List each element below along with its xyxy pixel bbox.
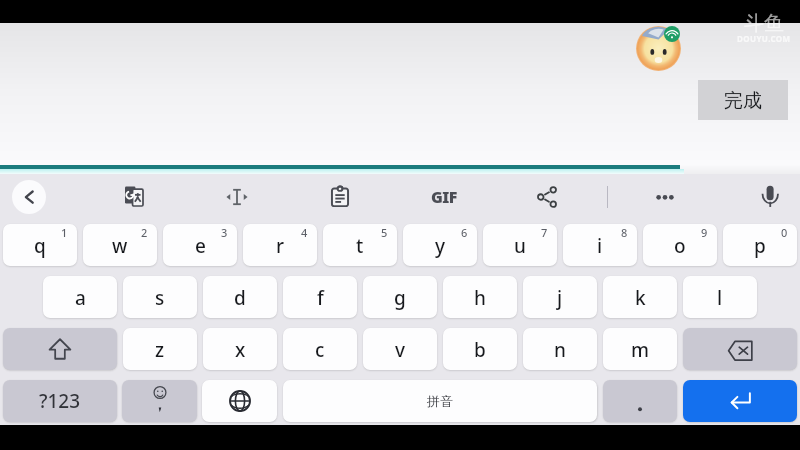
button[interactable]: c bbox=[283, 328, 357, 370]
button[interactable]: q bbox=[3, 224, 77, 266]
button[interactable]: k bbox=[603, 276, 677, 318]
button[interactable]: Back bbox=[12, 180, 46, 214]
staticText: x bbox=[235, 337, 246, 363]
button[interactable]: Backspace bbox=[683, 328, 797, 370]
staticText: u bbox=[514, 233, 526, 259]
button[interactable]: l bbox=[683, 276, 757, 318]
staticText: a bbox=[75, 285, 86, 311]
button[interactable]: Share bbox=[527, 177, 567, 217]
button[interactable]: f bbox=[283, 276, 357, 318]
button[interactable]: o bbox=[643, 224, 717, 266]
staticText: 2 bbox=[141, 225, 148, 240]
button[interactable]: t bbox=[323, 224, 397, 266]
staticText: 拼音 bbox=[427, 393, 453, 409]
staticText: h bbox=[474, 285, 486, 311]
button[interactable]: j bbox=[523, 276, 597, 318]
button[interactable]: Profile bbox=[634, 24, 684, 74]
button[interactable]: m bbox=[603, 328, 677, 370]
button[interactable]: w bbox=[83, 224, 157, 266]
button[interactable]: ?123 bbox=[3, 380, 117, 422]
staticText: v bbox=[395, 337, 406, 363]
button[interactable]: s bbox=[123, 276, 197, 318]
button[interactable]: y bbox=[403, 224, 477, 266]
button[interactable]: More options bbox=[645, 177, 685, 217]
button[interactable]: v bbox=[363, 328, 437, 370]
staticText: f bbox=[317, 285, 324, 311]
staticText: e bbox=[195, 233, 206, 259]
button[interactable]: d bbox=[203, 276, 277, 318]
staticText: d bbox=[234, 285, 246, 311]
button[interactable]: Enter bbox=[683, 380, 797, 422]
staticText: DOUYU.COM bbox=[737, 33, 791, 44]
button[interactable]: a bbox=[43, 276, 117, 318]
staticText: 8 bbox=[621, 225, 628, 240]
staticText: 6 bbox=[461, 225, 468, 240]
staticText: 4 bbox=[301, 225, 308, 240]
staticText: 1 bbox=[61, 225, 68, 240]
staticText: 9 bbox=[701, 225, 708, 240]
button[interactable]: e bbox=[163, 224, 237, 266]
staticText: y bbox=[435, 233, 446, 259]
staticText: GIF bbox=[431, 186, 457, 208]
staticText: b bbox=[474, 337, 486, 363]
button[interactable]: 完成 bbox=[698, 80, 788, 120]
staticText: j bbox=[557, 285, 563, 311]
staticText: 3 bbox=[221, 225, 228, 240]
staticText: s bbox=[155, 285, 165, 311]
staticText: ?123 bbox=[39, 388, 81, 414]
button[interactable]: g bbox=[363, 276, 437, 318]
button[interactable]: z bbox=[123, 328, 197, 370]
staticText: 完成 bbox=[724, 89, 762, 113]
staticText: 5 bbox=[381, 225, 388, 240]
button[interactable]: b bbox=[443, 328, 517, 370]
staticText: 7 bbox=[541, 225, 548, 240]
button[interactable]: Emoji bbox=[122, 380, 197, 422]
staticText: 斗鱼 bbox=[744, 11, 784, 36]
button[interactable]: x bbox=[203, 328, 277, 370]
button[interactable]: Translate bbox=[114, 177, 154, 217]
button[interactable]: r bbox=[243, 224, 317, 266]
staticText: z bbox=[155, 337, 165, 363]
staticText: r bbox=[276, 233, 285, 259]
button[interactable]: Shift bbox=[3, 328, 117, 370]
button[interactable]: u bbox=[483, 224, 557, 266]
staticText: c bbox=[315, 337, 325, 363]
button[interactable]: GIF bbox=[424, 177, 464, 217]
staticText: q bbox=[34, 233, 46, 259]
staticText: t bbox=[356, 233, 364, 259]
button[interactable]: Clipboard bbox=[320, 177, 360, 217]
button[interactable]: Period bbox=[603, 380, 677, 422]
button[interactable]: n bbox=[523, 328, 597, 370]
button[interactable]: i bbox=[563, 224, 637, 266]
staticText: i bbox=[597, 233, 603, 259]
staticText: l bbox=[717, 285, 723, 311]
button[interactable]: Text editing bbox=[217, 177, 257, 217]
staticText: 0 bbox=[781, 225, 788, 240]
staticText: o bbox=[674, 233, 686, 259]
staticText: n bbox=[554, 337, 566, 363]
button[interactable]: h bbox=[443, 276, 517, 318]
staticText: k bbox=[635, 285, 646, 311]
button[interactable]: Voice input bbox=[749, 177, 789, 217]
button[interactable]: Language bbox=[202, 380, 277, 422]
staticText: p bbox=[754, 233, 766, 259]
staticText: w bbox=[112, 233, 128, 259]
staticText: m bbox=[631, 337, 649, 363]
button[interactable]: p bbox=[723, 224, 797, 266]
staticText: g bbox=[394, 285, 406, 311]
button[interactable]: 拼音 bbox=[283, 380, 597, 422]
